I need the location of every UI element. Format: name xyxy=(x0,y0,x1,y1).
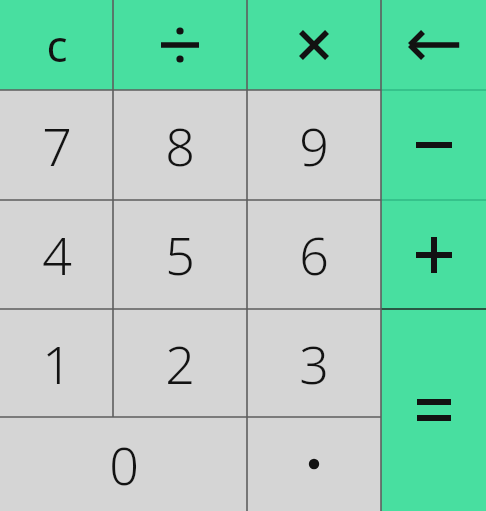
staticText: c xyxy=(46,15,68,75)
staticText: 5 xyxy=(165,219,195,290)
staticText: 7 xyxy=(42,110,72,181)
button[interactable]: 1 xyxy=(0,309,113,417)
button[interactable]: 7 xyxy=(0,90,113,200)
staticText: 9 xyxy=(299,110,329,181)
button[interactable]: Decimal point xyxy=(247,417,381,511)
button[interactable]: 8 xyxy=(113,90,247,200)
staticText: 1 xyxy=(42,328,72,399)
staticText: 6 xyxy=(299,219,329,290)
button[interactable]: Backspace xyxy=(381,0,486,90)
button[interactable]: Clear xyxy=(0,0,113,90)
staticText: 2 xyxy=(165,328,195,399)
button[interactable]: 3 xyxy=(247,309,381,417)
button[interactable]: Plus xyxy=(381,200,486,309)
staticText: 8 xyxy=(165,110,195,181)
button[interactable]: 5 xyxy=(113,200,247,309)
button[interactable]: Divide xyxy=(113,0,247,90)
staticText: 3 xyxy=(299,328,329,399)
button[interactable]: 0 xyxy=(0,417,247,511)
staticText: 0 xyxy=(109,429,139,500)
button[interactable]: 9 xyxy=(247,90,381,200)
button[interactable]: Multiply xyxy=(247,0,381,90)
button[interactable]: Minus xyxy=(381,90,486,200)
button[interactable]: 2 xyxy=(113,309,247,417)
button[interactable]: 6 xyxy=(247,200,381,309)
button[interactable]: Equals xyxy=(381,309,486,511)
button[interactable]: 4 xyxy=(0,200,113,309)
staticText: 4 xyxy=(42,219,72,290)
